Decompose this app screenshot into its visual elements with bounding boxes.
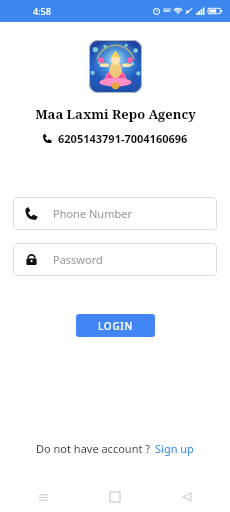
button[interactable]: App logo (89, 40, 142, 93)
button[interactable]: Recents (30, 484, 56, 510)
button[interactable]: Phone Number (13, 197, 217, 230)
staticText: Phone Number (53, 206, 132, 221)
button[interactable]: 6205143791-7004160696 (38, 130, 192, 147)
button[interactable]: Home (102, 484, 128, 510)
button[interactable]: Back (174, 484, 200, 510)
staticText: Maa Laxmi Repo Agency (35, 105, 196, 123)
staticText: LOGIN (98, 319, 134, 333)
staticText: 6205143791-7004160696 (58, 131, 188, 146)
staticText: 4:58 (33, 5, 51, 17)
staticText: Sign up (155, 441, 194, 456)
button[interactable]: LOGIN (76, 314, 155, 337)
staticText: Do not have account ? (36, 441, 151, 456)
button[interactable]: Password (13, 243, 217, 276)
staticText: Password (53, 252, 103, 267)
button[interactable]: Sign up (155, 441, 194, 456)
